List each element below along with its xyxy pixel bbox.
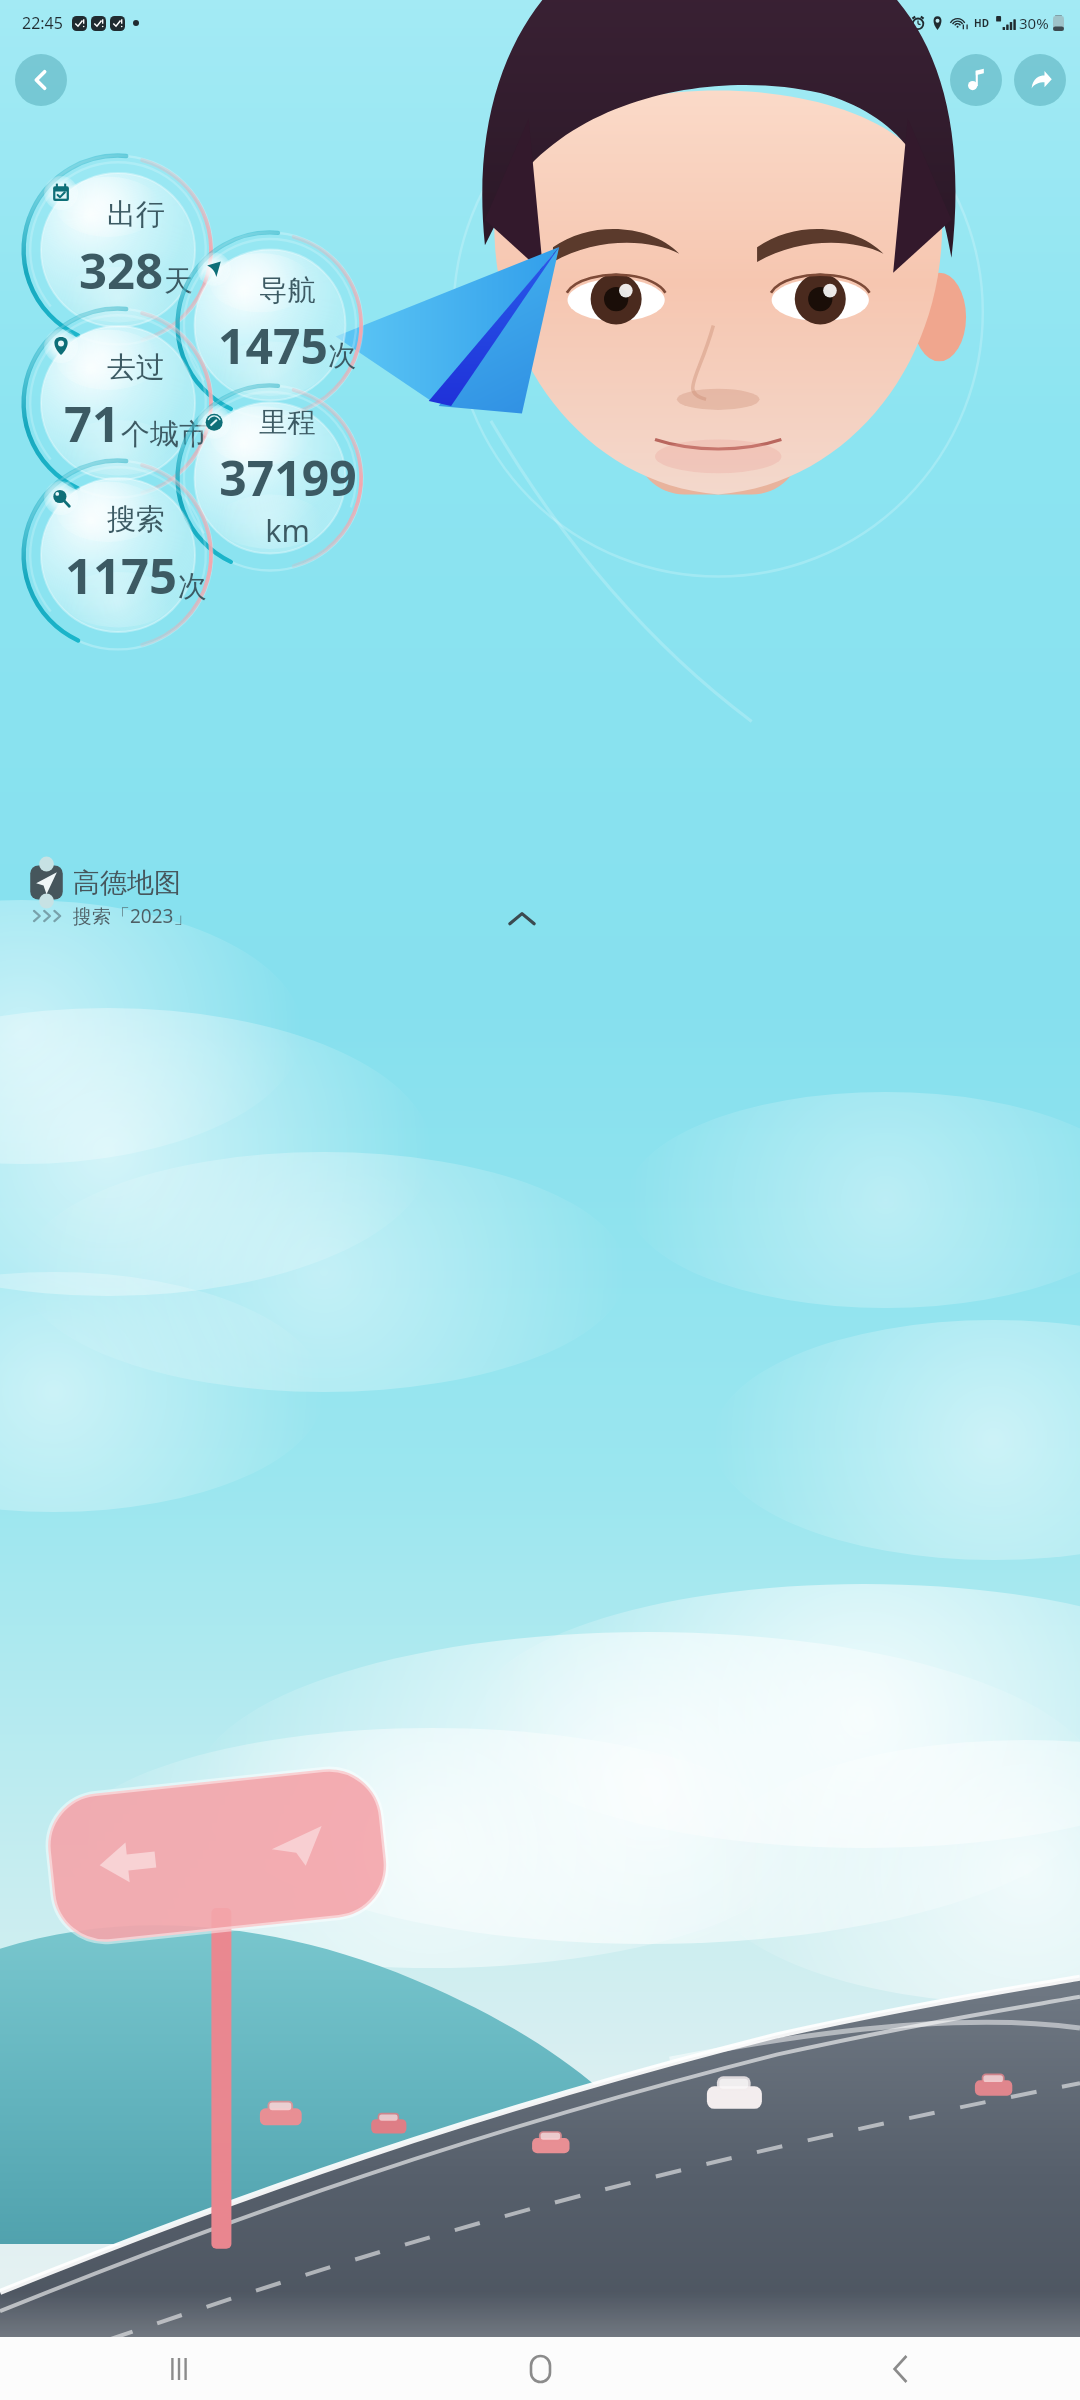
staticText: 里程 — [259, 405, 316, 441]
button[interactable]: Music — [950, 54, 1002, 106]
button[interactable]: 导航 1475 次 — [172, 227, 368, 423]
staticText: 22:45 — [22, 12, 63, 34]
staticText: 出行 — [107, 196, 165, 233]
button[interactable]: 出行 328 天 — [18, 150, 218, 350]
staticText: HD — [974, 16, 989, 30]
button[interactable]: Home — [508, 2337, 572, 2400]
button[interactable]: 去过 71 个城市 — [18, 303, 218, 503]
staticText: 次 — [178, 568, 207, 605]
button[interactable]: 里程 37199 km — [172, 380, 368, 576]
staticText: 搜索「2023」 — [73, 903, 193, 929]
staticText: 导航 — [259, 273, 316, 309]
staticText: 搜索 — [107, 501, 165, 538]
staticText: 去过 — [107, 349, 165, 386]
staticText: 30% — [1019, 13, 1049, 33]
staticText: 1475 — [218, 313, 328, 378]
staticText: 71 — [64, 390, 121, 457]
button[interactable]: 搜索 1175 次 — [18, 455, 218, 655]
button[interactable]: Recents — [148, 2337, 212, 2400]
staticText: 天 — [164, 263, 193, 300]
button[interactable]: Back — [868, 2337, 932, 2400]
button[interactable]: Preview — [886, 54, 938, 106]
staticText: 1175 — [65, 542, 178, 609]
staticText: 328 — [79, 237, 164, 304]
staticText: 高德地图 — [73, 866, 181, 900]
staticText: 37199 — [219, 445, 357, 510]
staticText: 次 — [328, 338, 357, 374]
staticText: km — [265, 510, 310, 551]
button[interactable]: Scroll up — [500, 898, 544, 942]
button[interactable]: Share — [1014, 54, 1066, 106]
staticText: 个城市 — [121, 416, 208, 453]
button[interactable]: Back — [15, 54, 67, 106]
